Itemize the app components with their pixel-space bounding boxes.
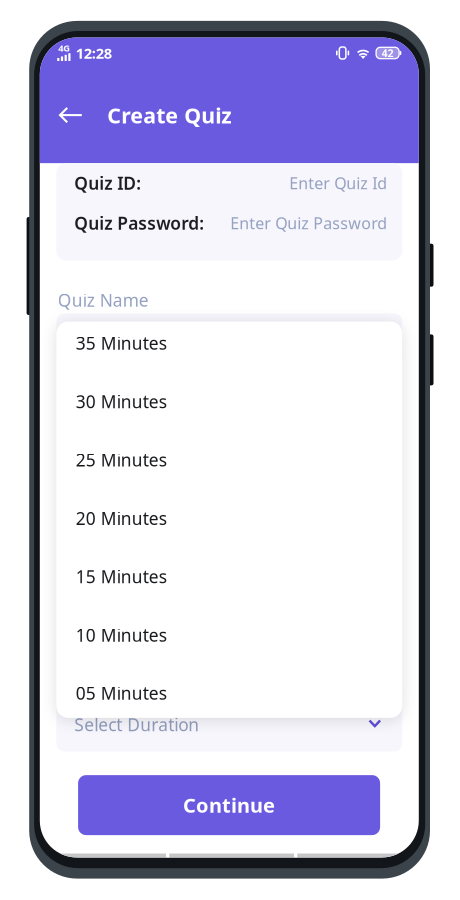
staticText: Select Duration [74, 713, 199, 736]
button[interactable]: 10 Minutes [56, 606, 402, 664]
staticText: 15 Minutes [76, 565, 167, 588]
button[interactable]: 20 Minutes [56, 489, 402, 547]
button[interactable]: Back [51, 97, 91, 133]
button[interactable]: Continue [78, 775, 380, 835]
staticText: Enter Quiz Id [289, 172, 387, 194]
staticText: 42 [382, 46, 394, 60]
staticText: 25 Minutes [76, 448, 167, 471]
button[interactable]: 30 Minutes [56, 372, 402, 431]
button[interactable]: Select Duration [56, 697, 402, 751]
staticText: 30 Minutes [76, 390, 167, 413]
staticText: Enter Quiz Name [74, 328, 214, 351]
button[interactable]: 05 Minutes [56, 668, 402, 718]
button[interactable]: 35 Minutes [56, 321, 402, 364]
button[interactable]: 25 Minutes [56, 431, 402, 489]
staticText: Continue [183, 792, 275, 818]
staticText: Enter Quiz Password [230, 212, 387, 234]
button[interactable]: 15 Minutes [56, 547, 402, 606]
staticText: 20 Minutes [76, 507, 167, 530]
staticText: 12:28 [76, 43, 112, 63]
staticText: Quiz Password: [74, 212, 204, 235]
staticText: Quiz Name [58, 288, 149, 311]
staticText: 4G [58, 42, 70, 54]
staticText: 05 Minutes [76, 681, 167, 704]
staticText: 10 Minutes [76, 623, 167, 646]
staticText: 35 Minutes [76, 331, 167, 354]
staticText: Create Quiz [107, 101, 232, 129]
staticText: Quiz ID: [74, 172, 141, 195]
